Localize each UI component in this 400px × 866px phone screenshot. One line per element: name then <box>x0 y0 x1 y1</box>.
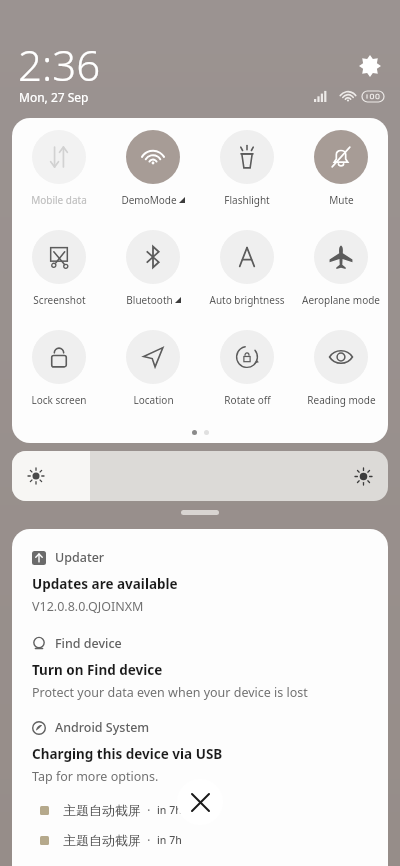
button[interactable]: 主题自动截屏 <box>12 801 388 819</box>
button[interactable]: Rotate off <box>200 318 294 418</box>
staticText: Location <box>133 393 174 407</box>
staticText: Android System <box>55 719 150 736</box>
button[interactable]: Auto brightness <box>200 218 294 318</box>
staticText: in 7h <box>157 803 182 817</box>
staticText: Aeroplane mode <box>302 293 380 307</box>
staticText: Tap for more options. <box>32 768 159 785</box>
staticText: Charging this device via USB <box>32 745 223 763</box>
button[interactable]: Mute <box>294 118 388 218</box>
staticText: Rotate off <box>224 393 271 407</box>
button[interactable]: Location <box>106 318 200 418</box>
button[interactable]: Flashlight <box>200 118 294 218</box>
staticText: Reading mode <box>307 393 376 407</box>
button[interactable]: Mobile data <box>12 118 106 218</box>
button[interactable]: Bluetooth <box>106 218 200 318</box>
staticText: 主题自动截屏 <box>63 832 141 848</box>
button[interactable]: Android System <box>12 719 388 785</box>
button[interactable]: Settings <box>352 48 388 84</box>
staticText: Turn on Find device <box>32 661 163 679</box>
button[interactable]: Aeroplane mode <box>294 218 388 318</box>
staticText: Screenshot <box>33 293 86 307</box>
button[interactable]: Updater <box>12 549 388 615</box>
staticText: in 7h <box>157 833 182 847</box>
staticText: Updater <box>55 549 105 566</box>
staticText: Mute <box>329 193 354 207</box>
button[interactable]: Close <box>177 779 223 825</box>
staticText: 主题自动截屏 <box>63 802 141 818</box>
staticText: V12.0.8.0.QJOINXM <box>32 598 144 615</box>
staticText: DemoMode <box>121 193 177 207</box>
button[interactable]: Screenshot <box>12 218 106 318</box>
staticText: · <box>147 831 151 849</box>
staticText: Bluetooth <box>126 293 173 307</box>
button[interactable]: 主题自动截屏 <box>12 831 388 849</box>
staticText: Updates are available <box>32 575 178 593</box>
staticText: · <box>147 801 151 819</box>
staticText: Lock screen <box>31 393 87 407</box>
staticText: Protect your data even when your device … <box>32 684 308 701</box>
button[interactable]: Find device <box>12 635 388 701</box>
staticText: 2:36 <box>18 36 101 93</box>
staticText: Flashlight <box>224 193 270 207</box>
staticText: Auto brightness <box>209 293 285 307</box>
button[interactable]: Lock screen <box>12 318 106 418</box>
staticText: Find device <box>55 635 122 652</box>
staticText: Mon, 27 Sep <box>19 89 89 105</box>
staticText: Mobile data <box>31 193 87 207</box>
button[interactable]: DemoMode <box>106 118 200 218</box>
button[interactable]: Brightness <box>12 451 388 501</box>
button[interactable]: Reading mode <box>294 318 388 418</box>
